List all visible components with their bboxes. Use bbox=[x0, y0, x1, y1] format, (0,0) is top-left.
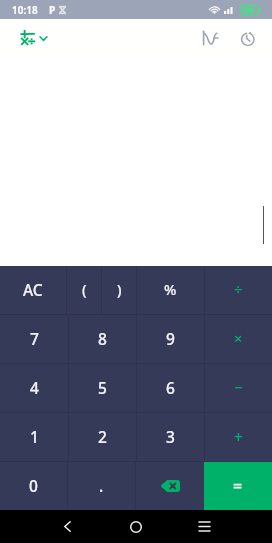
staticText: % bbox=[164, 279, 177, 299]
button[interactable]: ( bbox=[67, 266, 101, 314]
staticText: 6 bbox=[166, 377, 175, 398]
staticText: 1 bbox=[30, 426, 39, 447]
button[interactable]: + bbox=[205, 413, 272, 461]
button[interactable]: = bbox=[204, 462, 272, 510]
staticText: 3 bbox=[166, 426, 175, 447]
staticText: × bbox=[234, 328, 243, 348]
button[interactable]: − bbox=[205, 364, 272, 412]
staticText: 2 bbox=[98, 426, 107, 447]
button[interactable]: AC bbox=[0, 266, 66, 314]
button[interactable]: 4 bbox=[0, 364, 68, 412]
staticText: 7 bbox=[30, 328, 39, 349]
button[interactable]: ÷ bbox=[205, 266, 272, 314]
button[interactable]: 7 bbox=[0, 315, 68, 363]
staticText: − bbox=[234, 377, 243, 397]
button[interactable] bbox=[14, 26, 48, 50]
button[interactable]: 2 bbox=[69, 413, 136, 461]
button[interactable]: Backspace bbox=[136, 462, 204, 510]
staticText: ( bbox=[82, 279, 87, 299]
button[interactable]: 6 bbox=[137, 364, 204, 412]
button[interactable]: Recent apps bbox=[170, 510, 239, 543]
staticText: 10:18 bbox=[12, 3, 38, 17]
staticText: + bbox=[234, 426, 243, 447]
button[interactable]: ) bbox=[102, 266, 136, 314]
staticText: ) bbox=[117, 279, 122, 299]
button[interactable]: × bbox=[205, 315, 272, 363]
staticText: 9 bbox=[166, 328, 175, 349]
staticText: ÷ bbox=[234, 279, 243, 299]
button[interactable]: 0 bbox=[0, 462, 67, 510]
staticText: = bbox=[233, 475, 243, 497]
button[interactable]: 9 bbox=[137, 315, 204, 363]
button[interactable]: 8 bbox=[69, 315, 136, 363]
button[interactable]: Back bbox=[33, 510, 101, 543]
staticText: 5 bbox=[98, 377, 107, 398]
button[interactable]: % bbox=[137, 266, 204, 314]
staticText: AC bbox=[23, 279, 43, 300]
staticText: 8 bbox=[98, 328, 107, 349]
button[interactable]: . bbox=[68, 462, 135, 510]
button[interactable]: 1 bbox=[0, 413, 68, 461]
staticText: 4 bbox=[30, 377, 39, 398]
button[interactable]: Home bbox=[101, 510, 170, 543]
staticText: 0 bbox=[29, 475, 38, 496]
button[interactable]: 5 bbox=[69, 364, 136, 412]
staticText: . bbox=[99, 475, 104, 496]
button[interactable]: 3 bbox=[137, 413, 204, 461]
staticText: P bbox=[49, 3, 56, 17]
button[interactable]: History bbox=[234, 25, 260, 51]
button[interactable]: Graph bbox=[197, 25, 223, 51]
